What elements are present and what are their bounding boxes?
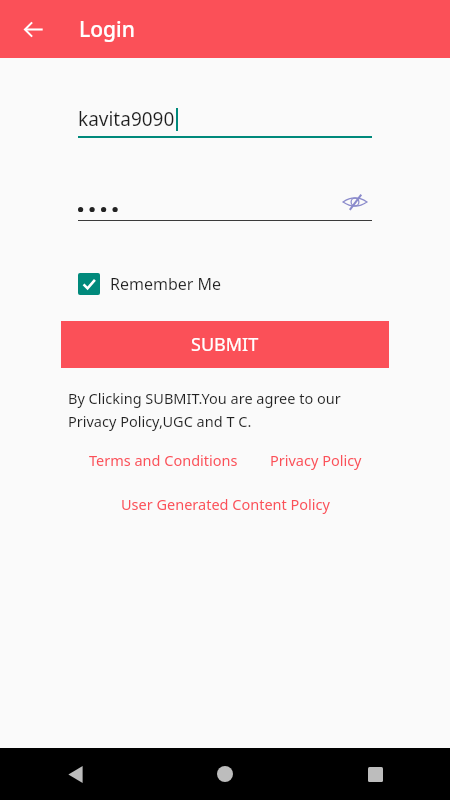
staticText: SUBMIT [191, 332, 259, 357]
button[interactable]: Toggle password visibility [338, 190, 372, 214]
button[interactable]: Back [9, 5, 57, 53]
staticText: By Clicking SUBMIT.You are agree to our [68, 388, 341, 408]
button[interactable]: User Generated Content Policy [121, 494, 330, 514]
button[interactable]: Remember Me [78, 273, 222, 295]
button[interactable]: kavita9090 [78, 102, 372, 136]
staticText: kavita9090 [78, 106, 175, 132]
button[interactable]: Terms and Conditions [89, 450, 238, 470]
staticText: Privacy Policy [270, 450, 362, 470]
staticText: Privacy Policy,UGC and T C. [68, 411, 252, 431]
button[interactable]: Back [0, 748, 150, 800]
button[interactable]: Privacy Policy [270, 450, 362, 470]
staticText: Remember Me [110, 273, 222, 295]
staticText: User Generated Content Policy [121, 494, 330, 514]
button[interactable]: Recents [300, 748, 450, 800]
staticText: Login [79, 15, 135, 44]
button[interactable]: SUBMIT [61, 321, 389, 368]
button[interactable]: Home [150, 748, 300, 800]
button[interactable] [78, 199, 124, 217]
staticText: Terms and Conditions [89, 450, 238, 470]
